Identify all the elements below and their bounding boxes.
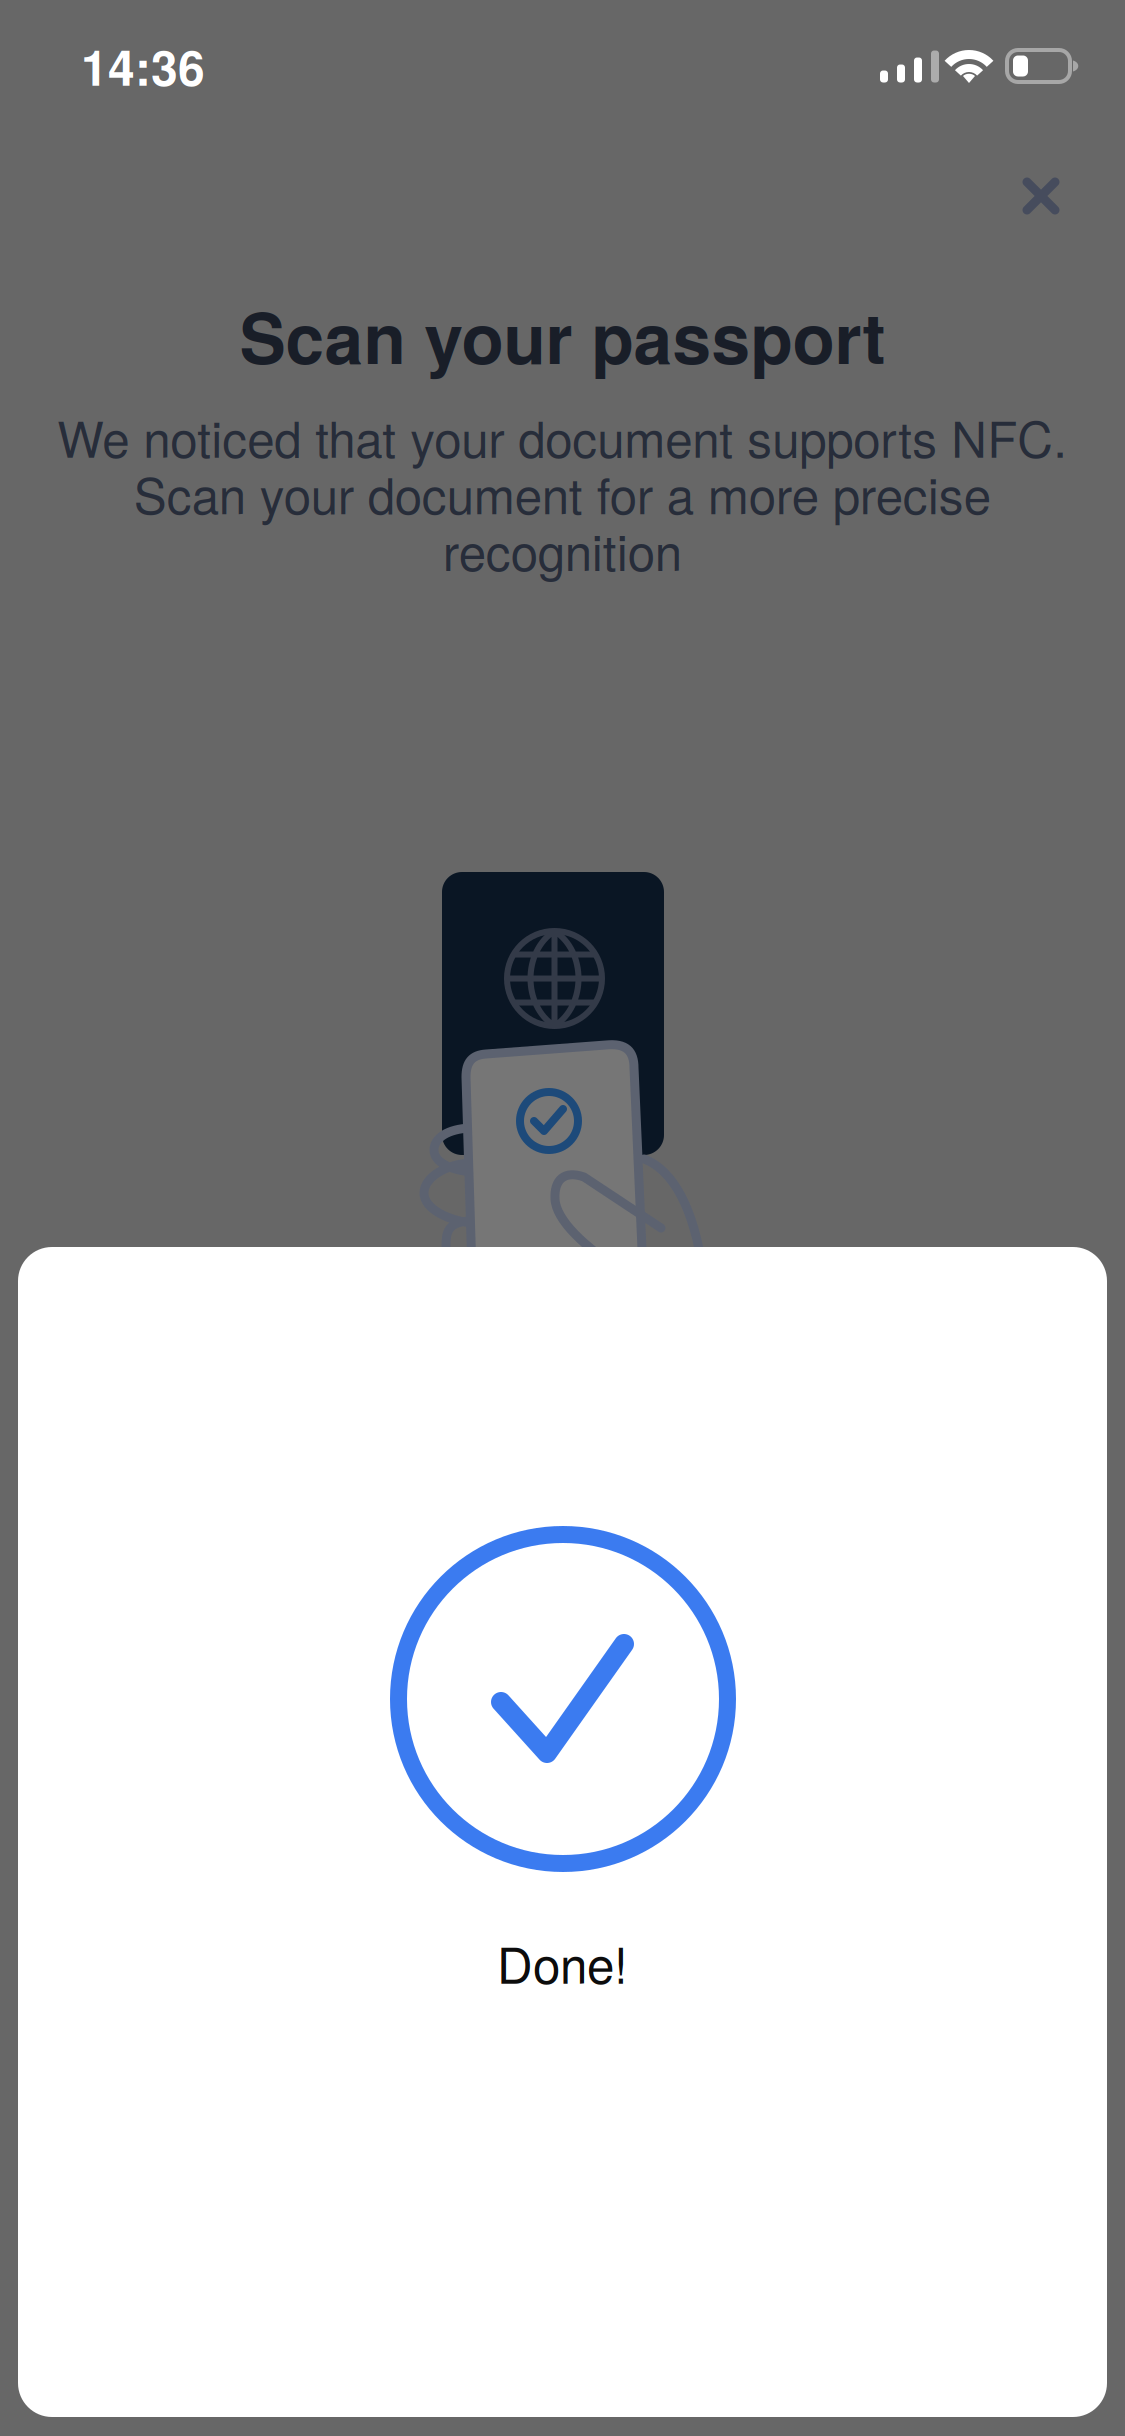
staticText: We noticed that your document supports N… — [57, 401, 1067, 585]
staticText: 14:36 — [81, 32, 205, 100]
staticText: Scan your passport — [239, 286, 885, 385]
staticText: Done! — [497, 1927, 628, 1998]
button[interactable]: Close — [987, 142, 1095, 250]
